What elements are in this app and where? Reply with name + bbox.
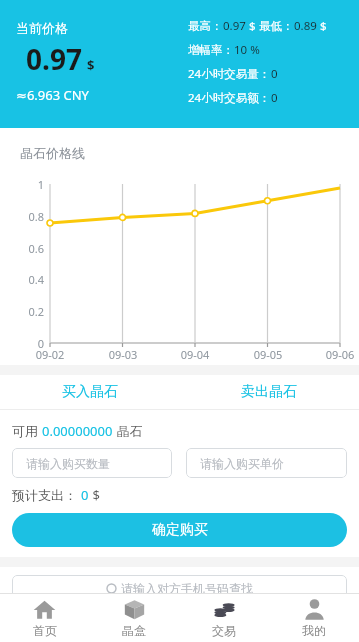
- staticText: 晶石: [113, 422, 143, 440]
- staticText: 晶盒: [122, 623, 146, 638]
- staticText: ≈6.963 CNY: [16, 86, 89, 104]
- staticText: $: [317, 18, 327, 34]
- staticText: 最高：: [188, 19, 223, 33]
- staticText: $: [87, 56, 95, 74]
- staticText: 0.89: [294, 18, 317, 34]
- staticText: 0.8: [6, 209, 44, 224]
- staticText: 可用: [12, 422, 42, 440]
- button[interactable]: 晶盒: [89, 594, 179, 642]
- staticText: 确定购买: [152, 521, 208, 539]
- staticText: 1: [6, 177, 44, 192]
- button[interactable]: 请输入购买数量: [12, 448, 172, 478]
- staticText: 24小时交易额：: [188, 90, 271, 106]
- staticText: 最低：: [259, 19, 294, 33]
- staticText: $: [246, 18, 259, 34]
- staticText: 请输入购买单价: [200, 456, 284, 471]
- staticText: 24小时交易量：: [188, 66, 271, 82]
- button[interactable]: 请输入对方手机号码查找: [12, 575, 347, 601]
- button[interactable]: 确定购买: [12, 513, 347, 547]
- staticText: 首页: [33, 623, 57, 638]
- button[interactable]: 首页: [0, 594, 89, 642]
- staticText: 请输入对方手机号码查找: [121, 581, 253, 596]
- staticText: 卖出晶石: [241, 383, 297, 401]
- staticText: 0.97: [26, 40, 82, 78]
- staticText: 09-03: [97, 347, 149, 362]
- staticText: 0: [271, 66, 278, 82]
- button[interactable]: 请输入购买单价: [186, 448, 347, 478]
- staticText: 0.2: [6, 304, 44, 319]
- staticText: 09-05: [242, 347, 294, 362]
- staticText: 09-04: [169, 347, 221, 362]
- staticText: 增幅率：: [188, 43, 234, 57]
- button[interactable]: 卖出晶石: [179, 375, 359, 409]
- staticText: 0.97: [223, 18, 246, 34]
- button[interactable]: 买入晶石: [0, 375, 179, 409]
- button[interactable]: 我的: [269, 594, 359, 642]
- staticText: 买入晶石: [62, 383, 118, 401]
- staticText: 当前价格: [16, 20, 68, 36]
- staticText: 0: [81, 486, 89, 504]
- staticText: 0: [271, 90, 278, 106]
- staticText: 预计支出：: [12, 486, 81, 504]
- staticText: 我的: [302, 623, 326, 638]
- staticText: 09-06: [314, 347, 359, 362]
- staticText: 晶石价格线: [20, 145, 85, 161]
- staticText: 0: [6, 336, 44, 351]
- staticText: 0.4: [6, 272, 44, 287]
- staticText: 0.6: [6, 241, 44, 256]
- staticText: $: [89, 486, 100, 504]
- button[interactable]: 交易: [179, 594, 269, 642]
- staticText: 10 %: [234, 42, 260, 58]
- staticText: 请输入购买数量: [26, 456, 110, 471]
- staticText: 09-02: [24, 347, 76, 362]
- staticText: 交易: [212, 623, 236, 638]
- staticText: 0.00000000: [42, 422, 113, 440]
